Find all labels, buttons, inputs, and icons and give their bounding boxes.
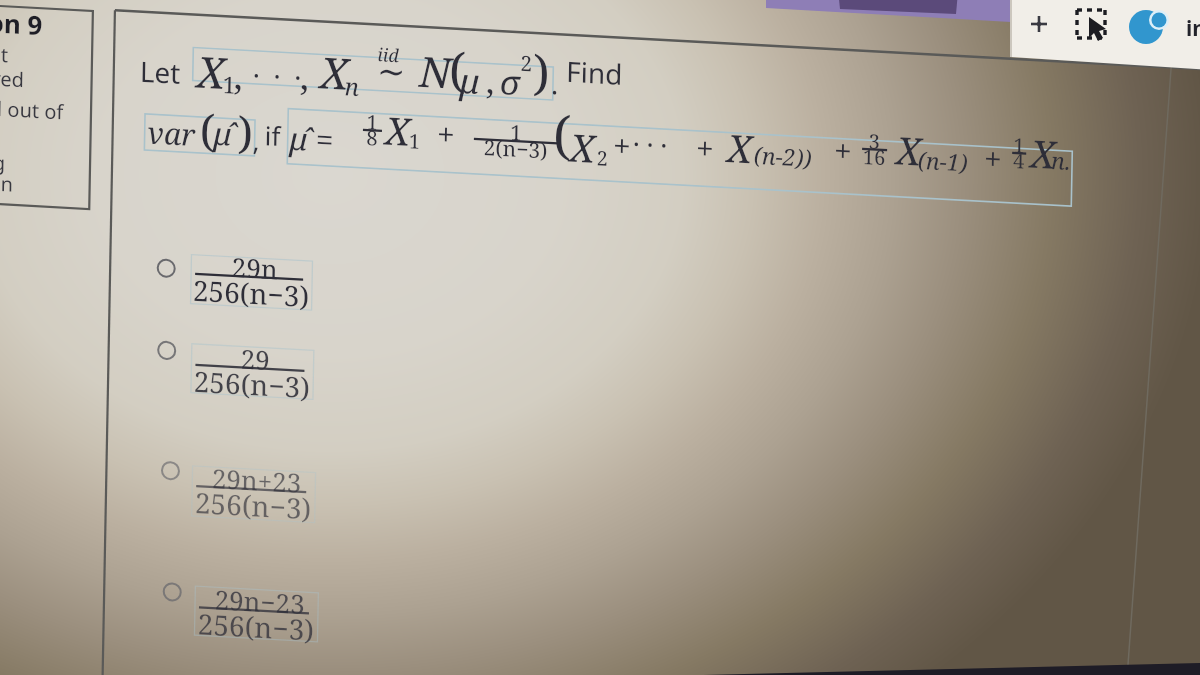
other: Quiz question — [0, 0, 1200, 675]
